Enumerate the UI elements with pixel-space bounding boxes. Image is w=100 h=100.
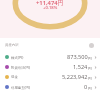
button[interactable]: 株式(円): [0, 52, 100, 62]
staticText: 現金: [11, 75, 18, 79]
staticText: 円: [88, 86, 92, 91]
button[interactable]: Help: [89, 43, 94, 48]
button[interactable]: 現金: [0, 72, 100, 82]
staticText: 円: [88, 56, 92, 61]
button[interactable]: 信用建玉(円): [0, 82, 100, 92]
staticText: 信用建玉(円): [11, 85, 31, 90]
staticText: 円: [88, 66, 92, 71]
staticText: 投資信託(円): [11, 65, 31, 70]
button[interactable]: 資産内訳: [0, 38, 100, 52]
staticText: 株式(円): [11, 55, 24, 60]
staticText: 5,223,942: [62, 73, 88, 81]
button[interactable]: 投資信託(円): [0, 62, 100, 72]
staticText: +11,474円: [36, 0, 64, 7]
staticText: 1,524: [73, 63, 88, 71]
staticText: 円: [88, 76, 92, 81]
staticText: 873,500: [67, 53, 88, 61]
staticText: 資産内訳: [5, 43, 19, 47]
staticText: +0.18%: [43, 5, 58, 11]
staticText: 0: [84, 83, 88, 91]
